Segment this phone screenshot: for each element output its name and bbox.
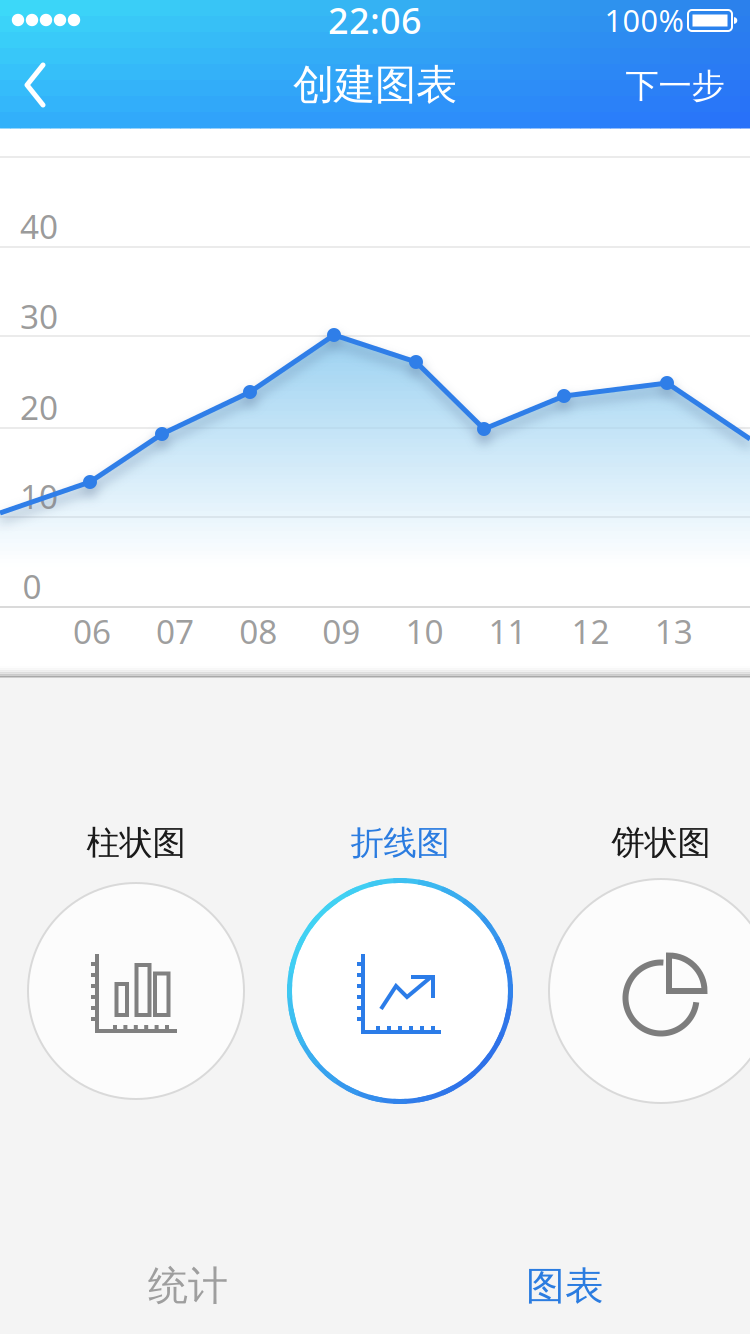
staticText: 22:06 xyxy=(328,0,422,44)
staticText: 10 xyxy=(405,609,443,653)
staticText: 08 xyxy=(239,609,277,653)
button[interactable]: 统计 xyxy=(68,1246,308,1326)
staticText: 12 xyxy=(572,609,610,653)
button[interactable]: 折线图 xyxy=(285,823,515,1104)
staticText: 创建图表 xyxy=(293,60,457,110)
button[interactable]: Back xyxy=(6,53,66,117)
button[interactable]: 下一步 xyxy=(585,54,750,118)
staticText: 30 xyxy=(20,294,58,338)
staticText: 09 xyxy=(322,609,360,653)
staticText: 13 xyxy=(655,609,693,653)
staticText: 100% xyxy=(604,0,683,40)
button[interactable]: 柱状图 xyxy=(26,823,246,1099)
button[interactable]: 图表 xyxy=(445,1246,685,1326)
staticText: 下一步 xyxy=(625,65,724,106)
staticText: 06 xyxy=(73,609,111,653)
staticText: 饼状图 xyxy=(611,822,710,863)
staticText: 11 xyxy=(488,609,526,653)
staticText: 10 xyxy=(20,474,58,518)
staticText: 20 xyxy=(20,385,58,429)
staticText: 统计 xyxy=(148,1261,228,1310)
staticText: 折线图 xyxy=(350,822,449,863)
staticText: 0 xyxy=(22,564,41,608)
staticText: 柱状图 xyxy=(86,822,185,863)
staticText: 40 xyxy=(20,204,58,248)
staticText: 图表 xyxy=(526,1262,604,1310)
staticText: 07 xyxy=(156,609,194,653)
button[interactable]: 饼状图 xyxy=(547,823,750,1103)
